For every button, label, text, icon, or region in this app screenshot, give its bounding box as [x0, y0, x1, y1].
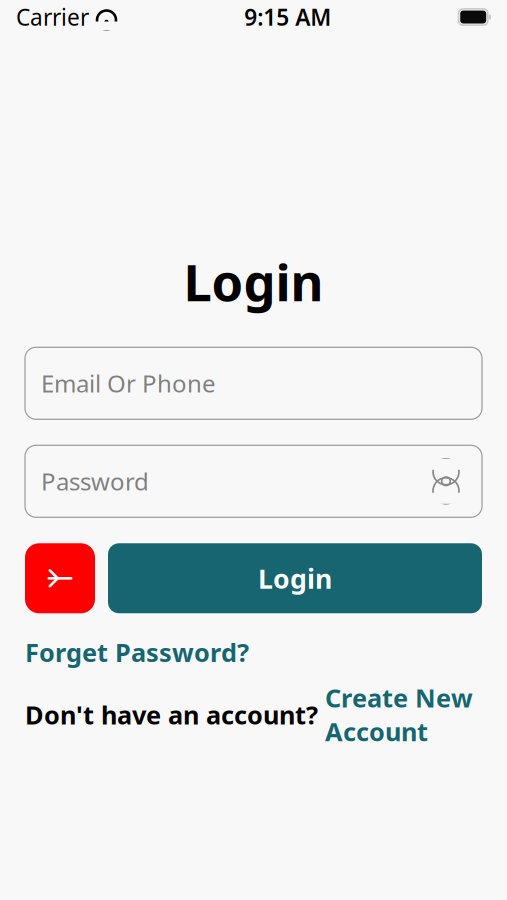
staticText: Don't have an account?: [25, 698, 325, 731]
staticText: Carrier: [16, 2, 89, 32]
button[interactable]: Forget Password?: [25, 635, 249, 669]
staticText: 9:15 AM: [244, 2, 331, 32]
button[interactable]: Create New Account: [325, 681, 473, 748]
staticText: Login: [258, 561, 332, 596]
staticText: Email Or Phone: [41, 367, 216, 399]
staticText: Password: [41, 465, 149, 497]
button[interactable]: Back: [25, 543, 95, 613]
staticText: Create New Account: [325, 681, 473, 748]
staticText: Login: [183, 248, 323, 315]
staticText: Forget Password?: [25, 635, 249, 669]
button[interactable]: Login: [108, 543, 482, 613]
button[interactable]: Show password: [426, 461, 466, 501]
